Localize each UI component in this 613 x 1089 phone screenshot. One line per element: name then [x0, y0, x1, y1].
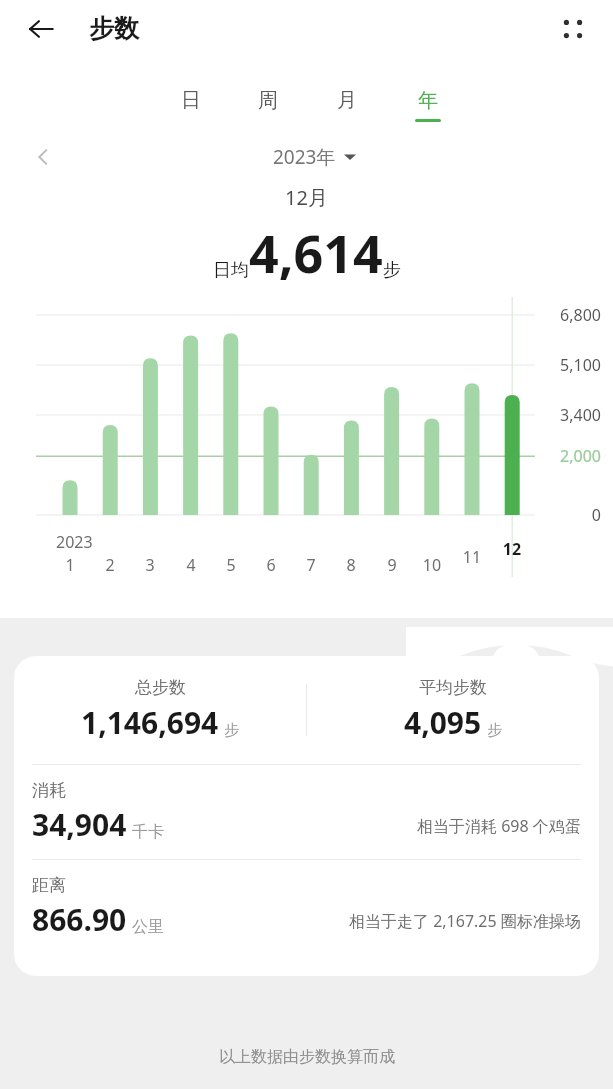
staticText: 相当于走了 2,167.25 圈标准操场 [349, 910, 581, 932]
staticText: 3,400 [531, 404, 601, 426]
staticText: 8 [331, 554, 371, 576]
staticText: 2023 [56, 531, 93, 553]
button[interactable]: 日 [161, 88, 221, 136]
staticText: 周 [258, 88, 278, 113]
staticText: 4 [171, 554, 211, 576]
staticText: 1 [50, 554, 90, 576]
button[interactable]: 距离 [14, 860, 599, 954]
button[interactable]: 周 [238, 88, 298, 136]
staticText: 10 [412, 554, 452, 576]
staticText: 步 [224, 721, 239, 740]
button[interactable]: Back [18, 6, 64, 52]
staticText: 4,095 [404, 702, 482, 743]
staticText: 步 [487, 721, 502, 740]
button[interactable]: 总步数 [14, 656, 306, 764]
staticText: 步数 [89, 13, 139, 44]
staticText: 日均 [213, 259, 249, 282]
staticText: 相当于消耗 698 个鸡蛋 [417, 815, 581, 837]
staticText: 平均步数 [419, 677, 487, 698]
button[interactable]: 月 [317, 88, 377, 136]
staticText: 12月 [285, 184, 328, 211]
staticText: 2,000 [531, 445, 601, 467]
staticText: 34,904 [32, 804, 127, 845]
staticText: 866.90 [32, 899, 127, 940]
staticText: 12 [492, 538, 532, 560]
button[interactable]: 消耗 [14, 765, 599, 859]
staticText: 5 [211, 554, 251, 576]
button[interactable]: 平均步数 [307, 656, 599, 764]
staticText: 日 [181, 88, 201, 113]
staticText: 2023年 [273, 144, 336, 170]
staticText: 9 [372, 554, 412, 576]
button[interactable]: 2023年 [273, 144, 356, 170]
button[interactable]: More options [549, 5, 597, 53]
button[interactable]: Previous year [22, 136, 64, 178]
staticText: 千卡 [132, 822, 164, 842]
staticText: 0 [531, 504, 601, 526]
staticText: 公里 [132, 917, 164, 937]
staticText: 消耗 [32, 780, 66, 801]
staticText: 6 [251, 554, 291, 576]
staticText: 11 [452, 546, 492, 568]
staticText: 5,100 [531, 354, 601, 376]
staticText: 月 [337, 88, 357, 113]
staticText: 7 [291, 554, 331, 576]
staticText: 3 [130, 554, 170, 576]
staticText: 距离 [32, 875, 66, 896]
button[interactable]: 年 [398, 88, 458, 136]
staticText: 以上数据由步数换算而成 [219, 1047, 395, 1067]
staticText: 1,146,694 [81, 702, 219, 743]
staticText: 2 [90, 554, 130, 576]
staticText: 4,614 [249, 217, 383, 288]
staticText: 年 [418, 88, 438, 113]
staticText: 步 [383, 259, 401, 282]
staticText: 6,800 [531, 304, 601, 326]
staticText: 总步数 [135, 677, 186, 698]
